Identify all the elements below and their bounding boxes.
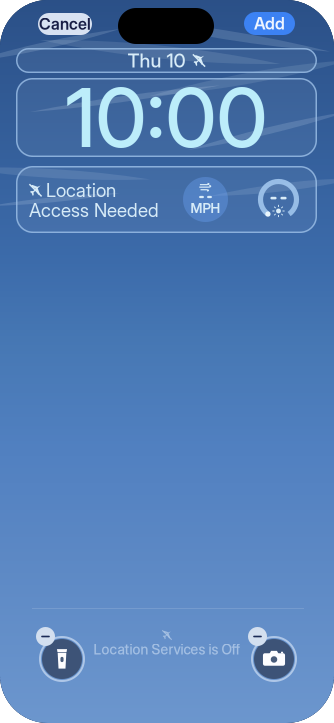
- staticText: Access Needed: [29, 199, 159, 222]
- staticText: Cancel: [39, 14, 91, 34]
- staticText: Add: [254, 13, 285, 34]
- button[interactable]: Add: [244, 12, 295, 35]
- button[interactable]: Flashlight: [36, 627, 88, 683]
- button[interactable]: 10:00: [16, 78, 317, 157]
- staticText: Location: [46, 179, 116, 202]
- button[interactable]: Location: [16, 166, 317, 233]
- staticText: MPH: [190, 200, 220, 216]
- staticText: 10:00: [65, 68, 267, 167]
- button[interactable]: Camera: [248, 627, 300, 683]
- staticText: Location Services is Off: [93, 641, 240, 658]
- staticText: Thu 10: [127, 49, 185, 72]
- button[interactable]: Cancel: [38, 13, 92, 35]
- button[interactable]: Thu 10: [16, 48, 317, 73]
